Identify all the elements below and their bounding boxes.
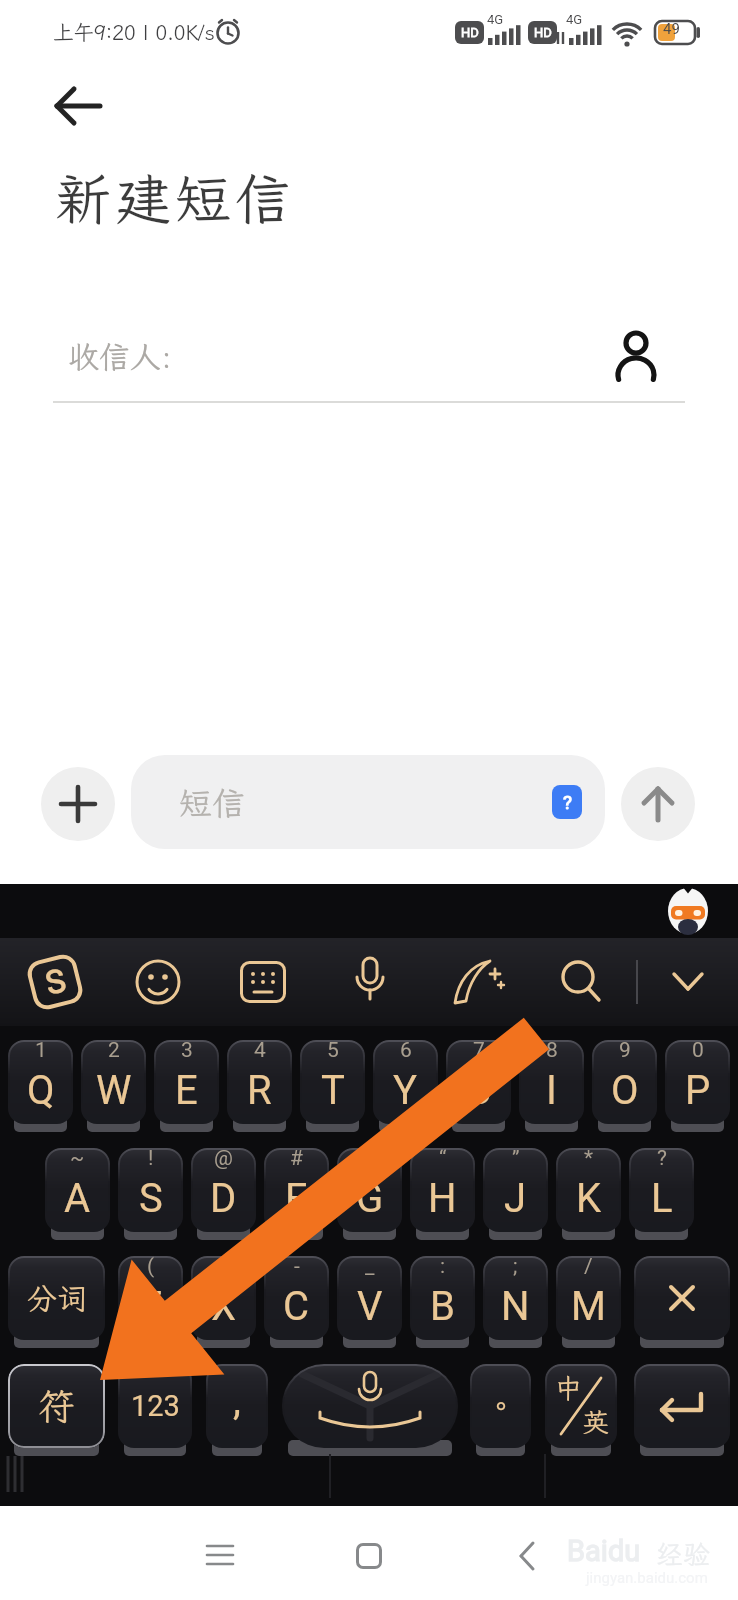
staticText: 上午9:20 | 0.0K/s: [53, 18, 215, 46]
staticText: /: [584, 1256, 593, 1279]
staticText: 8: [546, 1040, 558, 1063]
staticText: jingyan.baidu.com: [586, 1569, 708, 1587]
button[interactable]: [41, 767, 115, 841]
staticText: 4G: [566, 12, 583, 27]
button[interactable]: [610, 330, 662, 384]
button[interactable]: [282, 1364, 458, 1448]
button[interactable]: ?: [629, 1148, 694, 1232]
staticText: ;: [513, 1256, 518, 1279]
button[interactable]: 6: [373, 1040, 438, 1124]
button[interactable]: ?: [552, 785, 582, 819]
button[interactable]: [668, 966, 708, 998]
staticText: ): [220, 1256, 228, 1279]
staticText: HD: [534, 25, 552, 40]
button[interactable]: ;: [483, 1256, 548, 1340]
button[interactable]: #: [264, 1148, 329, 1232]
staticText: @: [214, 1148, 233, 1171]
staticText: 分词: [27, 1278, 87, 1318]
button[interactable]: _: [337, 1256, 402, 1340]
staticText: 英: [582, 1404, 609, 1440]
staticText: 经验: [656, 1536, 710, 1572]
staticText: 5: [327, 1040, 339, 1063]
staticText: C: [283, 1283, 310, 1330]
staticText: I: [546, 1067, 557, 1114]
staticText: E: [175, 1067, 198, 1114]
staticText: Q: [27, 1067, 55, 1114]
button[interactable]: [345, 1532, 393, 1580]
button[interactable]: ): [191, 1256, 256, 1340]
staticText: 49: [663, 20, 680, 38]
button[interactable]: [352, 956, 388, 1008]
staticText: “: [439, 1148, 447, 1171]
staticText: _: [365, 1256, 375, 1279]
staticText: 1: [35, 1040, 47, 1063]
button[interactable]: [505, 1532, 549, 1580]
button[interactable]: 123: [118, 1364, 192, 1448]
staticText: -: [294, 1256, 300, 1279]
button[interactable]: [621, 767, 695, 841]
staticText: :: [440, 1256, 446, 1279]
button[interactable]: 7: [446, 1040, 511, 1124]
staticText: ?: [563, 791, 572, 813]
staticText: B: [430, 1283, 455, 1330]
button[interactable]: [53, 326, 598, 400]
button[interactable]: 3: [154, 1040, 219, 1124]
button[interactable]: 短信: [131, 755, 605, 849]
staticText: 123: [131, 1389, 180, 1423]
button[interactable]: [45, 80, 109, 132]
button[interactable]: 0: [665, 1040, 730, 1124]
button[interactable]: ”: [483, 1148, 548, 1232]
button[interactable]: -: [264, 1256, 329, 1340]
staticText: S: [139, 1175, 163, 1222]
staticText: K: [576, 1175, 602, 1222]
staticText: 收信人:: [68, 336, 172, 377]
button[interactable]: [240, 961, 286, 1003]
staticText: 符: [38, 1382, 75, 1431]
button[interactable]: [662, 886, 714, 938]
button[interactable]: ': [337, 1148, 402, 1232]
button[interactable]: !: [118, 1148, 183, 1232]
staticText: D: [210, 1175, 237, 1222]
button[interactable]: [558, 958, 604, 1006]
staticText: X: [211, 1283, 237, 1330]
button[interactable]: ~: [45, 1148, 110, 1232]
button[interactable]: *: [556, 1148, 621, 1232]
staticText: 6: [400, 1040, 412, 1063]
button[interactable]: 2: [81, 1040, 146, 1124]
button[interactable]: [634, 1256, 730, 1340]
button[interactable]: 5: [300, 1040, 365, 1124]
button[interactable]: 1: [8, 1040, 73, 1124]
button[interactable]: 符: [8, 1364, 105, 1448]
button[interactable]: 中: [545, 1364, 617, 1448]
staticText: 3: [181, 1040, 193, 1063]
button[interactable]: [134, 958, 182, 1006]
button[interactable]: ,: [206, 1364, 268, 1448]
button[interactable]: [448, 955, 504, 1009]
staticText: ,: [233, 1377, 241, 1424]
button[interactable]: @: [191, 1148, 256, 1232]
button[interactable]: [196, 1534, 244, 1578]
staticText: M: [571, 1283, 606, 1330]
button[interactable]: 。: [470, 1364, 531, 1448]
staticText: 短信: [179, 781, 245, 824]
button[interactable]: 分词: [8, 1256, 105, 1340]
button[interactable]: /: [556, 1256, 621, 1340]
button[interactable]: (: [118, 1256, 183, 1340]
staticText: N: [501, 1283, 530, 1330]
button[interactable]: 9: [592, 1040, 657, 1124]
staticText: O: [611, 1067, 639, 1114]
staticText: L: [651, 1175, 673, 1222]
button[interactable]: “: [410, 1148, 475, 1232]
staticText: F: [285, 1175, 308, 1222]
button[interactable]: 8: [519, 1040, 584, 1124]
staticText: 2: [108, 1040, 120, 1063]
button[interactable]: S: [25, 952, 85, 1012]
staticText: ?: [657, 1148, 667, 1171]
button[interactable]: :: [410, 1256, 475, 1340]
button[interactable]: [634, 1364, 730, 1448]
button[interactable]: 4: [227, 1040, 292, 1124]
staticText: 新建短信: [53, 161, 293, 235]
staticText: P: [685, 1067, 711, 1114]
staticText: (: [147, 1256, 155, 1279]
